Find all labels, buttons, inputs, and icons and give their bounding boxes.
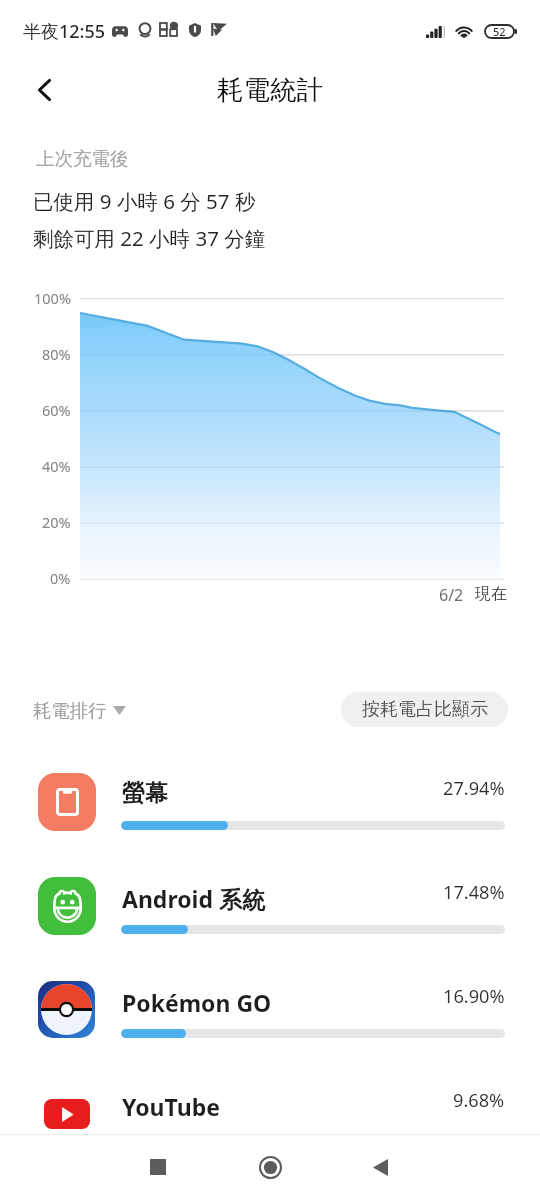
staticText: 16.90% (443, 984, 505, 1009)
button[interactable] (0, 1069, 540, 1132)
staticText: 6/2 (439, 584, 464, 606)
staticText: 60% (42, 400, 71, 420)
staticText: 耗電排行 (33, 699, 107, 722)
button[interactable]: Recents (134, 1143, 182, 1191)
staticText: 剩餘可用 22 小時 37 分鐘 (33, 224, 266, 252)
button[interactable] (0, 861, 540, 951)
staticText: 52 (493, 24, 506, 39)
staticText: 0% (50, 568, 71, 588)
staticText: 20% (42, 512, 71, 532)
staticText: Pokémon GO (122, 987, 272, 1018)
button[interactable]: Home (246, 1143, 294, 1191)
staticText: YouTube (122, 1091, 220, 1122)
staticText: 螢幕 (122, 779, 168, 808)
staticText: 按耗電占比顯示 (362, 698, 488, 721)
button[interactable]: 按耗電占比顯示 (341, 692, 508, 727)
staticText: 已使用 9 小時 6 分 57 秒 (33, 187, 256, 215)
button[interactable]: 耗電排行 (26, 691, 133, 729)
button[interactable] (0, 965, 540, 1055)
staticText: 半夜12:55 (23, 19, 106, 44)
staticText: 100% (34, 288, 71, 308)
button[interactable] (0, 757, 540, 847)
button[interactable]: Back (356, 1143, 404, 1191)
staticText: 17.48% (443, 880, 505, 905)
staticText: 上次充電後 (36, 147, 129, 170)
staticText: 耗電統計 (217, 73, 323, 106)
staticText: 現在 (475, 584, 507, 604)
staticText: 27.94% (443, 776, 505, 801)
staticText: 40% (42, 456, 71, 476)
staticText: 9.68% (453, 1088, 505, 1113)
staticText: 80% (42, 344, 71, 364)
staticText: Android 系統 (122, 883, 265, 914)
button[interactable]: Back (20, 66, 68, 114)
